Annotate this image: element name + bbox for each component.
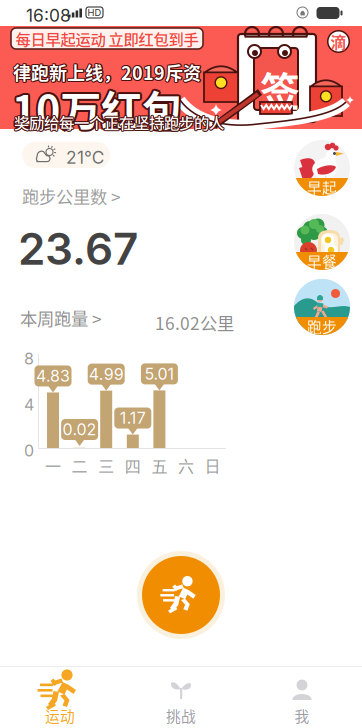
button[interactable]: 我	[242, 667, 362, 728]
button[interactable]: 跑步	[294, 279, 350, 335]
staticText: 8	[24, 349, 34, 368]
staticText: 0	[24, 441, 34, 460]
staticText: 10万红包	[12, 76, 183, 136]
button[interactable]: 挑战	[121, 667, 241, 728]
staticText: 跑步	[307, 315, 337, 337]
staticText: 10万红包	[12, 80, 183, 140]
staticText: 奖励给每一个正在坚持跑步的人	[15, 111, 225, 133]
staticText: 10万红包	[11, 77, 182, 136]
staticText: 4.83	[36, 366, 70, 386]
staticText: 21℃	[66, 147, 104, 168]
staticText: 日	[205, 454, 221, 477]
staticText: 一	[45, 454, 61, 477]
staticText: 23.67	[18, 222, 138, 275]
button[interactable]: 21℃	[22, 142, 110, 168]
staticText: 4	[24, 395, 34, 414]
staticText: 奖励给每一个正在坚持跑步的人	[13, 111, 223, 133]
staticText: 签	[260, 60, 300, 118]
button[interactable]: 本周跑量 >	[20, 308, 102, 328]
staticText: 早起	[307, 176, 337, 198]
staticText: HD	[87, 7, 101, 18]
staticText: 跑步公里数 >	[22, 183, 121, 209]
staticText: 三	[98, 454, 114, 477]
button[interactable]: 开始跑步	[137, 551, 225, 639]
staticText: 奖励给每一个正在坚持跑步的人	[14, 111, 224, 133]
staticText: 早餐	[307, 250, 337, 272]
staticText: 滴	[330, 30, 346, 53]
staticText: 挑战	[166, 705, 196, 726]
staticText: 每日早起运动 立即红包到手	[15, 27, 198, 50]
staticText: 四	[125, 454, 141, 477]
staticText: 10万红包	[12, 78, 183, 138]
staticText: 16.02公里	[155, 310, 234, 335]
staticText: 奖励给每一个正在坚持跑步的人	[14, 110, 224, 132]
staticText: 0.02	[63, 420, 97, 439]
staticText: 奖励给每一个正在坚持跑步的人	[15, 110, 225, 132]
button[interactable]: 签	[0, 26, 362, 129]
staticText: 律跑新上线，2019斥资	[14, 59, 202, 85]
staticText: 我	[294, 705, 309, 726]
staticText: 5.01	[144, 364, 174, 384]
button[interactable]: 早餐	[294, 214, 350, 270]
staticText: 16:08	[26, 5, 71, 26]
staticText: 律跑新上线，2019斥资	[13, 58, 201, 84]
staticText: 律跑新上线，2019斥资	[12, 60, 200, 86]
staticText: 奖励给每一个正在坚持跑步的人	[15, 112, 225, 134]
staticText: 10万红包	[14, 78, 185, 138]
staticText: 10万红包	[13, 77, 184, 136]
staticText: 律跑新上线，2019斥资	[13, 60, 201, 86]
staticText: 律跑新上线，2019斥资	[14, 60, 202, 86]
staticText: 运动	[45, 705, 75, 726]
button[interactable]: 跑步公里数 >	[22, 186, 126, 206]
staticText: 10万红包	[10, 78, 181, 138]
staticText: 1.17	[120, 408, 146, 428]
staticText: 10万红包	[11, 79, 182, 139]
button[interactable]: 运动	[0, 667, 120, 728]
staticText: 奖励给每一个正在坚持跑步的人	[13, 110, 223, 132]
staticText: 六	[178, 454, 194, 477]
button[interactable]: 早起	[294, 140, 350, 196]
staticText: 10万红包	[13, 79, 184, 139]
staticText: 五	[151, 454, 167, 477]
staticText: 4.99	[89, 364, 124, 384]
staticText: 律跑新上线，2019斥资	[12, 59, 200, 85]
staticText: 律跑新上线，2019斥资	[12, 58, 200, 84]
staticText: 奖励给每一个正在坚持跑步的人	[13, 112, 223, 134]
staticText: 二	[72, 454, 88, 477]
staticText: 律跑新上线，2019斥资	[13, 59, 201, 85]
staticText: 奖励给每一个正在坚持跑步的人	[14, 112, 224, 134]
staticText: 律跑新上线，2019斥资	[14, 58, 202, 84]
staticText: 本周跑量 >	[20, 305, 102, 331]
